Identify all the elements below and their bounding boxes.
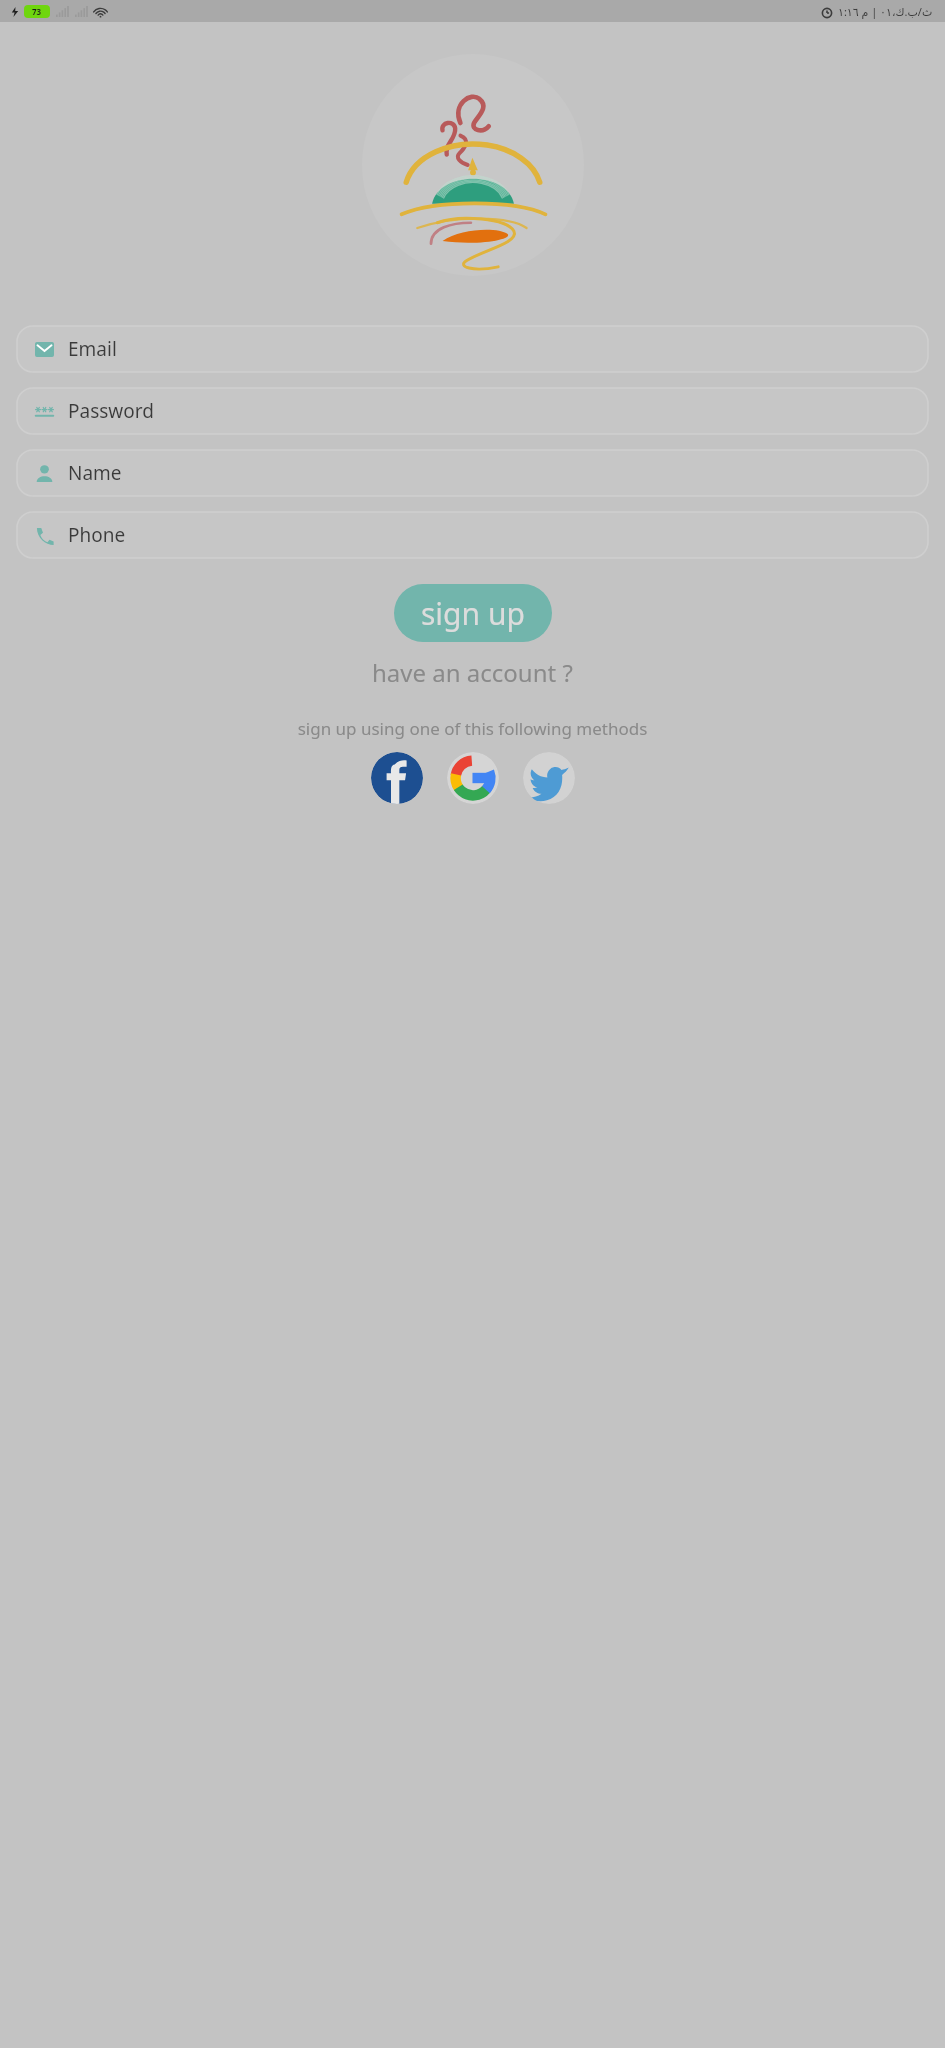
staticText: sign up [421, 593, 525, 634]
staticText: 73 [32, 6, 42, 17]
button[interactable]: Password [17, 388, 928, 434]
button[interactable]: Sign up with Twitter [523, 752, 575, 804]
button[interactable]: Sign up with Facebook [371, 752, 423, 804]
button[interactable]: Sign up with Google [447, 752, 499, 804]
staticText: have an account ? [372, 656, 573, 689]
staticText: Email [68, 336, 117, 362]
staticText: Password [68, 398, 154, 424]
button[interactable]: sign up [394, 584, 552, 642]
staticText: Name [68, 460, 122, 486]
staticText: sign up using one of this following meth… [0, 717, 945, 740]
button[interactable]: have an account ? [362, 650, 583, 695]
staticText: Phone [68, 522, 126, 548]
button[interactable]: Email [17, 326, 928, 372]
button[interactable]: Name [17, 450, 928, 496]
staticText: ث/ب.ك،٠١ | م ١:١٦ [838, 4, 933, 19]
button[interactable]: Phone [17, 512, 928, 558]
